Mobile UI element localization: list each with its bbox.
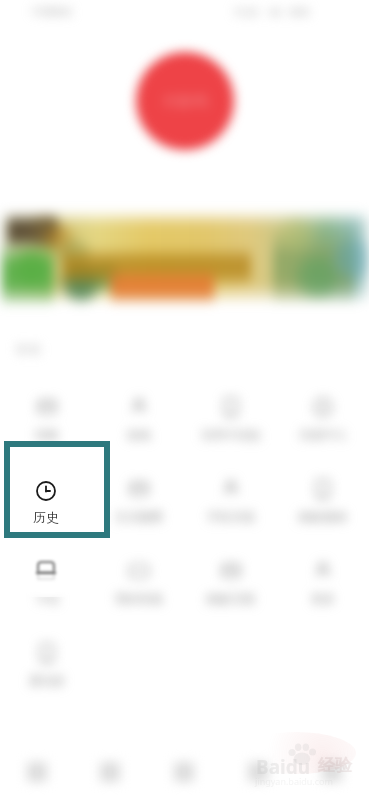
staticText: 生活缴费 (115, 509, 163, 524)
staticText: 充值中心 (299, 427, 347, 442)
button[interactable]: 手机充值 (185, 464, 277, 546)
button[interactable]: 历史 (0, 464, 93, 546)
staticText: 付款码 (163, 92, 208, 111)
button[interactable]: 生活缴费 (93, 464, 185, 546)
staticText: jingyan.baidu.com (255, 775, 333, 787)
button[interactable]: 充值中心 (277, 382, 369, 464)
staticText: 我的快递 (115, 591, 163, 606)
button[interactable]: 蚂蚁森林 (277, 464, 369, 546)
staticText: 历史 (35, 509, 59, 524)
staticText: 卡包 (35, 591, 59, 606)
staticText: 蚂蚁森林 (299, 509, 347, 524)
staticText: 转账 (35, 427, 59, 442)
staticText: 历史 (33, 509, 59, 525)
button[interactable]: 卡包 (0, 546, 93, 628)
button[interactable]: 我的快递 (93, 546, 185, 628)
staticText: 手机充值 (207, 509, 255, 524)
button[interactable]: 蚂蚁庄园 (185, 546, 277, 628)
button[interactable]: 理财 (73, 744, 147, 800)
staticText: Baidu (256, 754, 311, 780)
staticText: 蚂蚁庄园 (207, 591, 255, 606)
button[interactable]: 历史 (4, 441, 110, 538)
button[interactable]: 付款码 (136, 52, 234, 150)
button[interactable]: 通讯录 (0, 628, 93, 710)
button[interactable]: 收钱 (93, 382, 185, 464)
staticText: 经验 (318, 755, 352, 776)
staticText: 信用卡还款 (201, 427, 261, 442)
button[interactable]: 首页 (0, 744, 73, 800)
button[interactable]: 转账 (0, 382, 93, 464)
button[interactable]: 我的 (295, 744, 369, 800)
staticText: 收钱 (127, 427, 151, 442)
button[interactable] (0, 212, 369, 302)
button[interactable]: 信用卡还款 (185, 382, 277, 464)
staticText: 通讯录 (29, 673, 65, 688)
button[interactable]: 更多 (277, 546, 369, 628)
button[interactable]: 口碑 (147, 744, 221, 800)
staticText: 更多 (311, 591, 335, 606)
button[interactable]: 朋友 (221, 744, 295, 800)
staticText: 中国移动 (32, 5, 72, 18)
